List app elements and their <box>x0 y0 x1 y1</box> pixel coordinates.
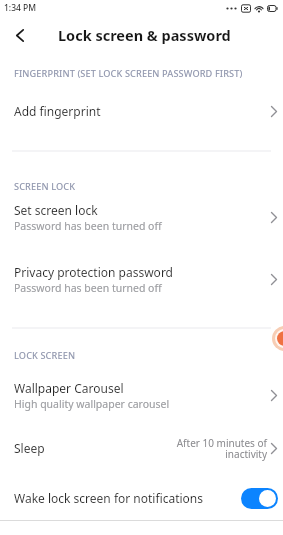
staticText: Add fingerprint <box>14 103 101 119</box>
staticText: Wallpaper Carousel <box>14 380 124 396</box>
staticText: 1:34 PM <box>4 2 37 14</box>
staticText: After 10 minutes of inactivity <box>176 436 267 461</box>
staticText: Lock screen & password <box>58 25 231 45</box>
staticText: Password has been turned off <box>14 219 162 233</box>
button[interactable]: Privacy protection password <box>0 256 283 302</box>
staticText: High quality wallpaper carousel <box>14 397 170 411</box>
button[interactable]: Set screen lock <box>0 194 283 240</box>
button[interactable]: Sleep <box>0 428 283 468</box>
staticText: Privacy protection password <box>14 264 173 280</box>
staticText: LOCK SCREEN <box>14 349 76 362</box>
button[interactable]: Wake lock screen for notifications <box>0 477 283 519</box>
staticText: Sleep <box>14 440 45 456</box>
button[interactable] <box>8 23 32 47</box>
staticText: Set screen lock <box>14 202 98 218</box>
staticText: Password has been turned off <box>14 281 162 295</box>
staticText: SCREEN LOCK <box>14 180 76 193</box>
button[interactable]: Wallpaper Carousel <box>0 372 283 418</box>
staticText: Wake lock screen for notifications <box>14 490 204 506</box>
button[interactable] <box>241 488 278 509</box>
staticText: FINGERPRINT (SET LOCK SCREEN PASSWORD FI… <box>14 67 243 80</box>
button[interactable]: Add fingerprint <box>0 90 283 132</box>
